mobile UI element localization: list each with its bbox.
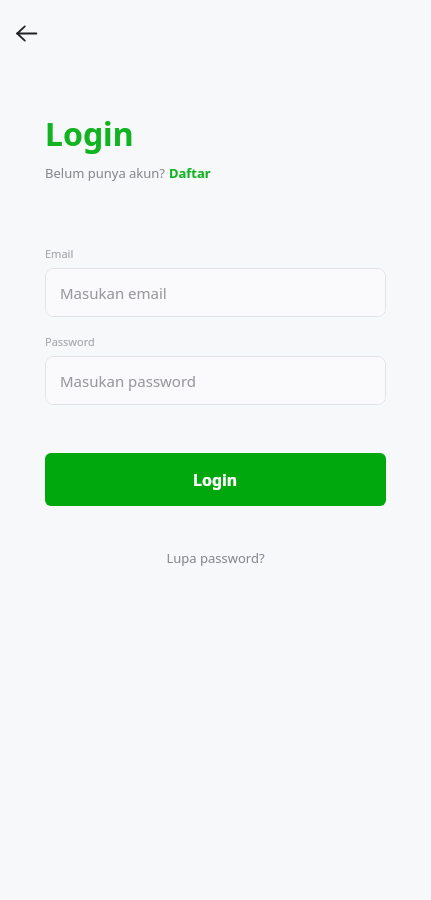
button[interactable]: Login — [45, 453, 386, 506]
staticText: Belum punya akun? — [45, 164, 169, 182]
button[interactable]: Masukan password — [45, 356, 386, 405]
staticText: Login — [45, 112, 134, 156]
staticText: Password — [45, 334, 95, 349]
staticText: Masukan password — [60, 371, 197, 391]
button[interactable]: Back — [8, 15, 44, 51]
button[interactable]: Daftar — [169, 164, 211, 182]
staticText: Login — [193, 469, 238, 491]
button[interactable]: Lupa password? — [160, 546, 271, 570]
staticText: Masukan email — [60, 283, 167, 303]
staticText: Email — [45, 246, 74, 261]
button[interactable]: Masukan email — [45, 268, 386, 317]
staticText: Lupa password? — [166, 549, 265, 567]
staticText: Daftar — [169, 164, 211, 182]
